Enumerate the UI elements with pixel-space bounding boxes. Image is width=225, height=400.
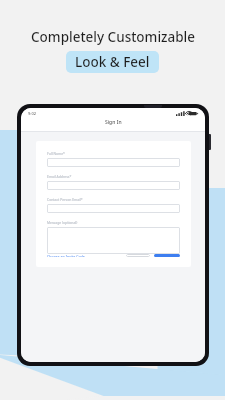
button[interactable] bbox=[47, 158, 180, 167]
staticText: Sign In bbox=[105, 119, 122, 126]
staticText: Message (optional) bbox=[47, 220, 78, 225]
staticText: Contact Person Email* bbox=[47, 197, 83, 202]
button[interactable]: Sign In bbox=[154, 254, 180, 257]
staticText: Look & Feel bbox=[75, 53, 150, 71]
button[interactable] bbox=[47, 227, 180, 254]
staticText: Full Name* bbox=[47, 151, 65, 156]
staticText: 9:02 bbox=[28, 111, 36, 116]
button[interactable]: Cancel bbox=[126, 254, 150, 257]
button[interactable] bbox=[47, 181, 180, 190]
staticText: Email Address* bbox=[47, 174, 72, 179]
button[interactable] bbox=[47, 204, 180, 213]
staticText: Completely Customizable bbox=[31, 28, 195, 46]
staticText: Choose an Invite Code bbox=[47, 254, 85, 257]
button[interactable]: Choose an Invite Code bbox=[47, 254, 85, 257]
